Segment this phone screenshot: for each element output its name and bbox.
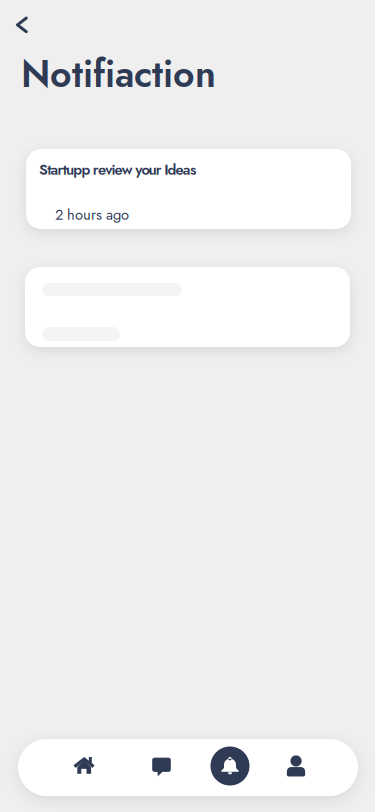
staticText: Startupp review your Ideas <box>39 159 196 180</box>
staticText: Notifiaction <box>21 47 216 101</box>
button[interactable]: Messages <box>134 739 190 796</box>
button[interactable]: Back <box>2 7 42 43</box>
staticText: 2 hours ago <box>55 204 129 225</box>
button[interactable]: Startupp review your Ideas <box>26 149 351 229</box>
button[interactable]: Profile <box>268 739 324 796</box>
button[interactable]: Home <box>57 739 113 796</box>
button[interactable]: Notifications <box>202 739 258 796</box>
